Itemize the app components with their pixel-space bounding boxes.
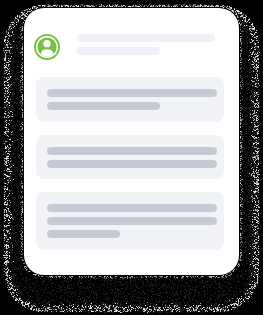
button[interactable]	[36, 192, 224, 250]
button[interactable]	[36, 77, 224, 122]
button[interactable]	[36, 135, 224, 179]
other: Profile	[34, 34, 60, 60]
